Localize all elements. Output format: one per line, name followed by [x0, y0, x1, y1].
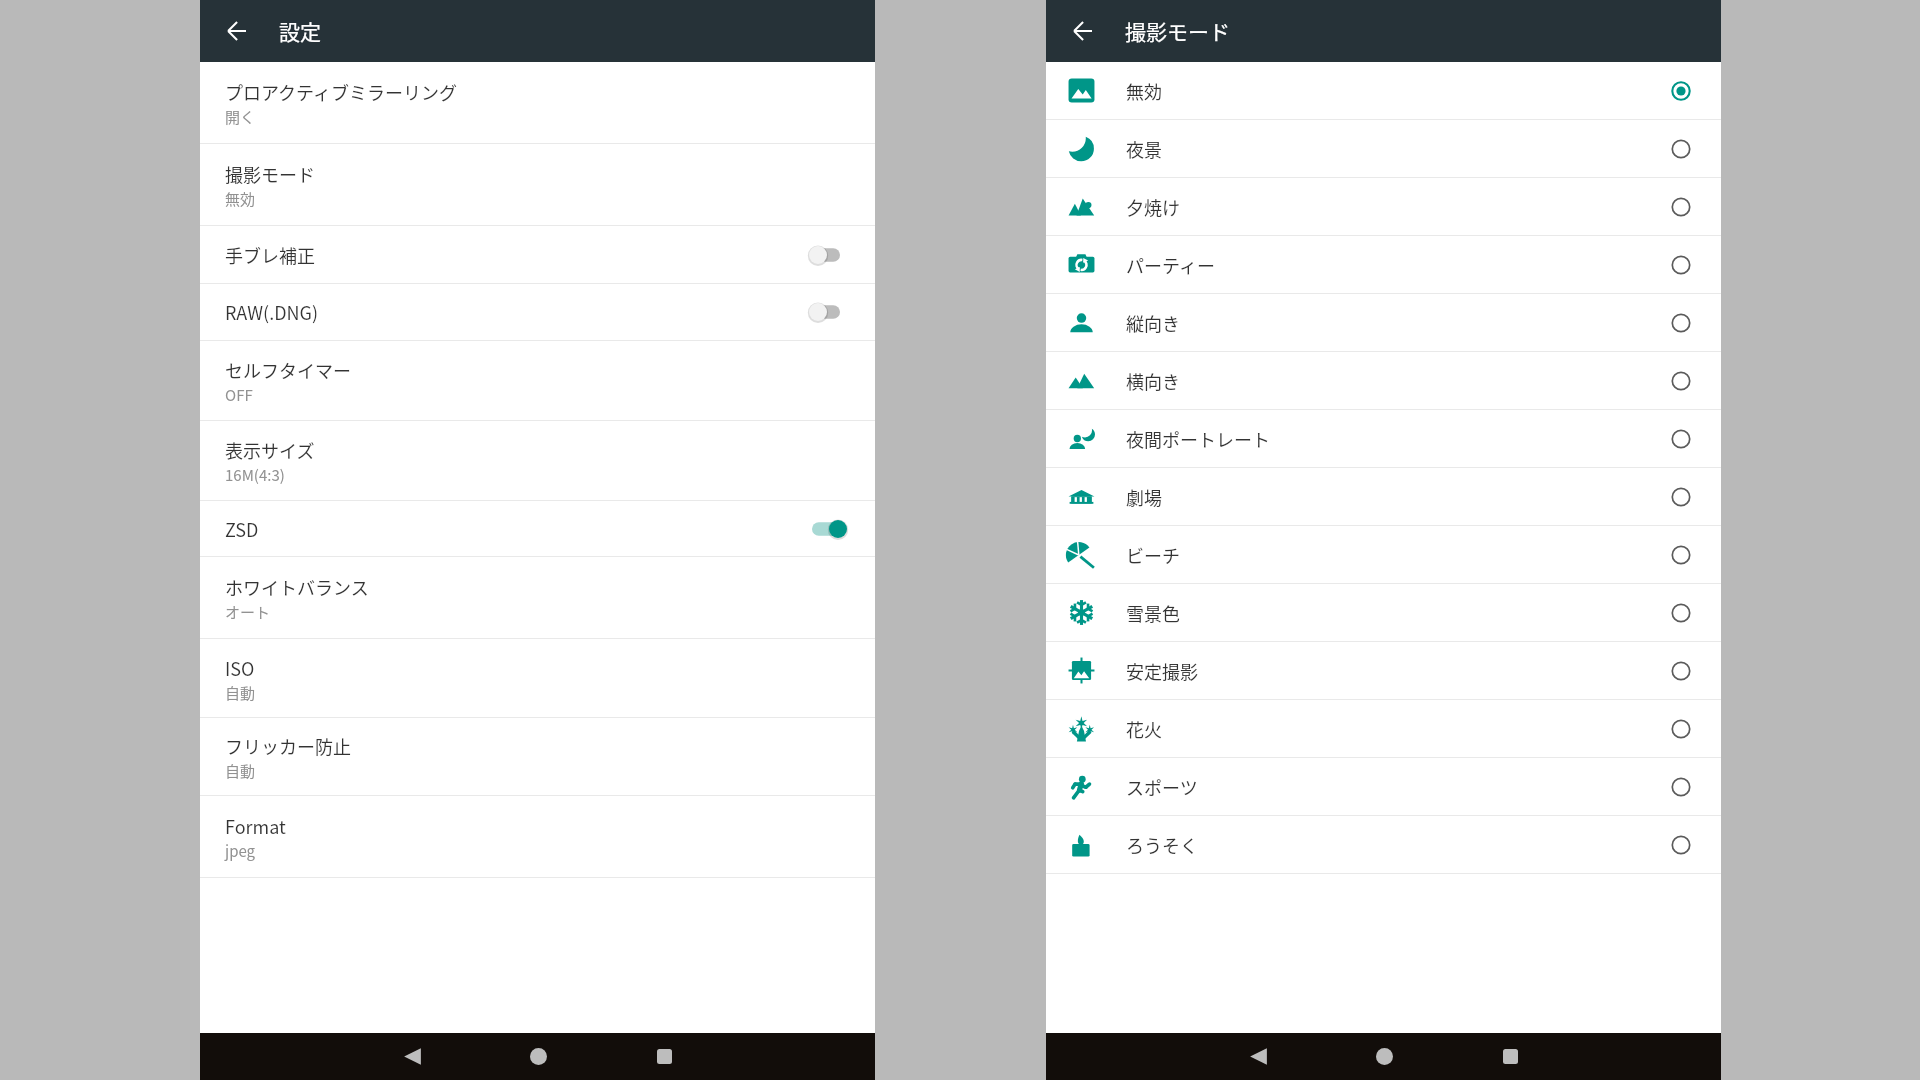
- button[interactable]: 雪景色: [1046, 584, 1721, 642]
- button[interactable]: ビーチ: [1046, 526, 1721, 584]
- staticText: 無効: [225, 188, 256, 210]
- staticText: フリッカー防止: [225, 733, 351, 759]
- staticText: ろうそく: [1126, 832, 1671, 858]
- staticText: パーティー: [1126, 252, 1671, 278]
- button[interactable]: 夜間ポートレート: [1046, 410, 1721, 468]
- button[interactable]: 夜景: [1046, 120, 1721, 178]
- button[interactable]: Back: [382, 1033, 442, 1080]
- staticText: プロアクティブミラーリング: [225, 79, 458, 105]
- button[interactable]: Back: [206, 0, 266, 62]
- staticText: 夜間ポートレート: [1126, 426, 1671, 452]
- button[interactable]: 表示サイズ: [200, 421, 875, 501]
- button[interactable]: Format: [200, 796, 875, 878]
- staticText: 撮影モード: [1125, 16, 1230, 46]
- button[interactable]: Home: [1354, 1033, 1414, 1080]
- staticText: 設定: [279, 16, 321, 46]
- staticText: ビーチ: [1126, 542, 1671, 568]
- staticText: 自動: [225, 760, 256, 782]
- staticText: 無効: [1126, 78, 1671, 104]
- staticText: 夕焼け: [1126, 194, 1671, 220]
- staticText: 劇場: [1126, 484, 1671, 510]
- staticText: スポーツ: [1126, 774, 1671, 800]
- button[interactable]: Back: [1052, 0, 1112, 62]
- staticText: OFF: [225, 384, 253, 406]
- button[interactable]: スポーツ: [1046, 758, 1721, 816]
- staticText: 縦向き: [1126, 310, 1671, 336]
- staticText: 自動: [225, 682, 256, 704]
- staticText: ZSD: [225, 516, 809, 542]
- staticText: 夜景: [1126, 136, 1671, 162]
- staticText: 手ブレ補正: [225, 242, 809, 268]
- button[interactable]: 横向き: [1046, 352, 1721, 410]
- staticText: 16M(4:3): [225, 464, 285, 486]
- staticText: RAW(.DNG): [225, 299, 809, 325]
- button[interactable]: Home: [508, 1033, 568, 1080]
- button[interactable]: 劇場: [1046, 468, 1721, 526]
- button[interactable]: 花火: [1046, 700, 1721, 758]
- button[interactable]: RAW(.DNG): [200, 284, 875, 341]
- button[interactable]: 手ブレ補正: [200, 226, 875, 284]
- button[interactable]: 安定撮影: [1046, 642, 1721, 700]
- staticText: ホワイトバランス: [225, 574, 369, 600]
- button[interactable]: ろうそく: [1046, 816, 1721, 874]
- button[interactable]: セルフタイマー: [200, 341, 875, 421]
- staticText: 表示サイズ: [225, 437, 315, 463]
- button[interactable]: ホワイトバランス: [200, 557, 875, 639]
- staticText: 安定撮影: [1126, 658, 1671, 684]
- button[interactable]: Recents: [1480, 1033, 1540, 1080]
- staticText: jpeg: [225, 840, 256, 862]
- button[interactable]: ISO: [200, 639, 875, 718]
- button[interactable]: パーティー: [1046, 236, 1721, 294]
- staticText: Format: [225, 813, 286, 839]
- button[interactable]: 撮影モード: [200, 144, 875, 226]
- staticText: 開く: [225, 106, 256, 128]
- button[interactable]: プロアクティブミラーリング: [200, 62, 875, 144]
- staticText: ISO: [225, 655, 255, 681]
- staticText: セルフタイマー: [225, 357, 351, 383]
- staticText: 雪景色: [1126, 600, 1671, 626]
- staticText: 横向き: [1126, 368, 1671, 394]
- staticText: オート: [225, 601, 271, 623]
- staticText: 撮影モード: [225, 161, 315, 187]
- staticText: 花火: [1126, 716, 1671, 742]
- button[interactable]: フリッカー防止: [200, 718, 875, 796]
- button[interactable]: 夕焼け: [1046, 178, 1721, 236]
- button[interactable]: ZSD: [200, 501, 875, 557]
- button[interactable]: Recents: [634, 1033, 694, 1080]
- button[interactable]: 縦向き: [1046, 294, 1721, 352]
- button[interactable]: Back: [1228, 1033, 1288, 1080]
- button[interactable]: 無効: [1046, 62, 1721, 120]
